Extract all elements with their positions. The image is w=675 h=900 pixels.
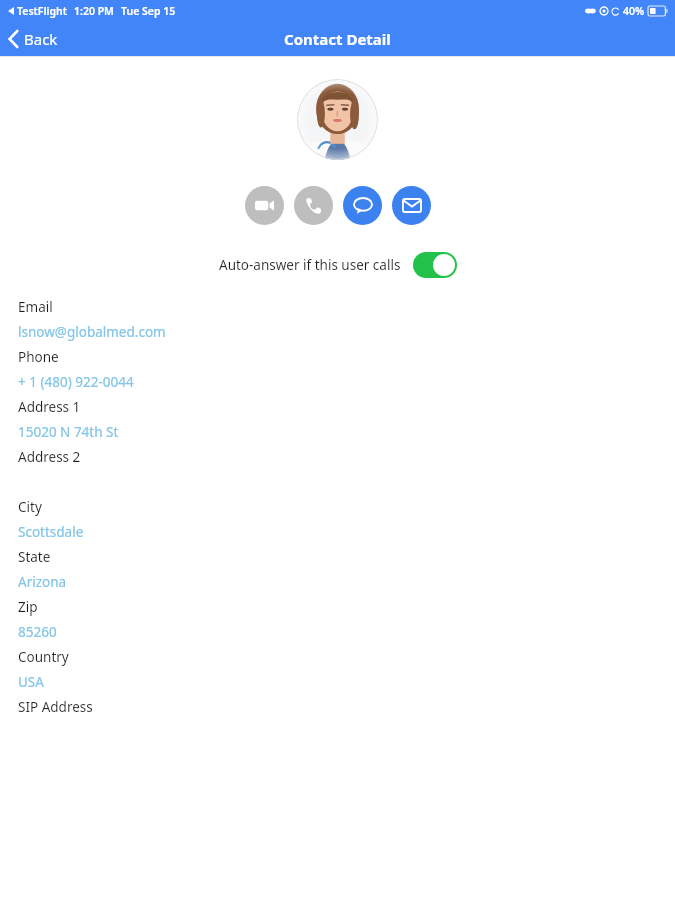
button[interactable]: Video call xyxy=(245,186,284,225)
staticText: Arizona xyxy=(18,573,67,591)
staticText: + 1 (480) 922-0044 xyxy=(18,373,134,391)
staticText: 40% xyxy=(623,4,645,18)
staticText: Back xyxy=(24,29,58,49)
button[interactable]: Auto-answer toggle, on xyxy=(413,252,457,278)
staticText: 85260 xyxy=(18,623,57,641)
button[interactable]: Message xyxy=(343,186,382,225)
staticText: Email xyxy=(18,298,53,316)
button[interactable]: Email xyxy=(392,186,431,225)
staticText: USA xyxy=(18,673,44,691)
staticText: Phone xyxy=(18,348,59,366)
button[interactable]: Call xyxy=(294,186,333,225)
staticText: State xyxy=(18,548,51,566)
staticText: Zip xyxy=(18,598,38,616)
staticText: Country xyxy=(18,648,69,666)
staticText: lsnow@globalmed.com xyxy=(18,323,166,341)
staticText: Address 1 xyxy=(18,398,81,416)
staticText: Address 2 xyxy=(18,448,81,466)
staticText: Auto-answer if this user calls xyxy=(219,256,401,274)
staticText: Tue Sep 15 xyxy=(121,4,176,18)
staticText: 1:20 PM xyxy=(74,4,114,18)
button[interactable]: Back xyxy=(0,21,70,56)
staticText: SIP Address xyxy=(18,698,93,716)
staticText: 15020 N 74th St xyxy=(18,423,119,441)
button[interactable]: Auto-answer if this user calls xyxy=(0,252,675,278)
staticText: TestFlight xyxy=(17,4,67,18)
staticText: Contact Detail xyxy=(284,29,391,49)
button[interactable]: Contact photo xyxy=(297,79,378,160)
staticText: City xyxy=(18,498,42,516)
staticText: Scottsdale xyxy=(18,523,84,541)
